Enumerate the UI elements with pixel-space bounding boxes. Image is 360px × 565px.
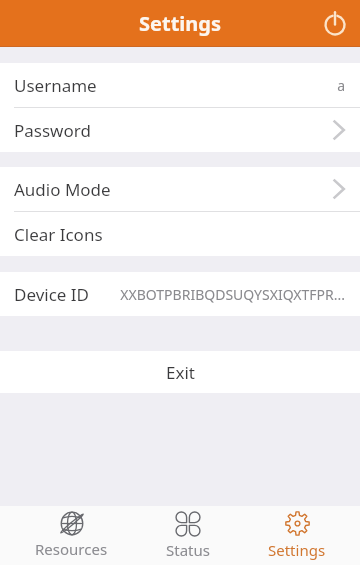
button[interactable]: Power (315, 4, 355, 44)
button[interactable]: Username (0, 63, 360, 107)
staticText: Password (14, 119, 91, 142)
button[interactable]: Device ID (0, 272, 360, 316)
button[interactable]: Exit (0, 351, 360, 393)
staticText: a (103, 76, 345, 95)
button[interactable]: Audio Mode (0, 167, 360, 211)
button[interactable]: Status (137, 506, 238, 565)
staticText: Status (166, 540, 210, 560)
button[interactable]: Settings (238, 506, 356, 565)
button[interactable]: Clear Icons (0, 212, 360, 256)
staticText: Settings (268, 540, 326, 560)
staticText: Settings (139, 10, 221, 37)
staticText: Clear Icons (14, 223, 103, 246)
staticText: Audio Mode (14, 178, 111, 201)
staticText: Exit (166, 361, 195, 384)
staticText: Device ID (14, 283, 90, 306)
button[interactable]: Resources (6, 506, 137, 565)
staticText: XXBOTPBRIBQDSUQYSXIQXTFPR... (96, 285, 345, 304)
button[interactable]: Password (0, 108, 360, 152)
staticText: Resources (35, 539, 108, 559)
staticText: Username (14, 74, 97, 97)
